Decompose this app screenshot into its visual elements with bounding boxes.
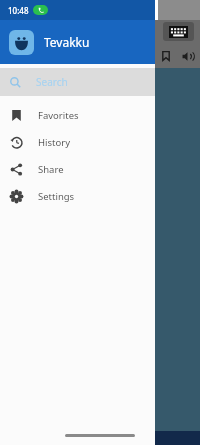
- button[interactable]: Keyboard: [163, 22, 194, 41]
- button[interactable]: Volume: [179, 48, 195, 64]
- button[interactable]: App icon: [9, 30, 34, 55]
- staticText: History: [38, 136, 70, 149]
- button[interactable]: Bookmark: [158, 48, 174, 64]
- staticText: 10:48: [8, 5, 29, 16]
- button[interactable]: Search: [0, 68, 155, 96]
- staticText: Settings: [38, 190, 75, 203]
- button[interactable]: Settings: [0, 183, 155, 210]
- staticText: Favorites: [38, 109, 79, 122]
- button[interactable]: Share: [0, 156, 155, 183]
- button[interactable]: Favorites: [0, 102, 155, 129]
- staticText: Tevakku: [44, 34, 90, 50]
- staticText: Share: [38, 163, 64, 176]
- staticText: Search: [36, 75, 68, 89]
- button[interactable]: History: [0, 129, 155, 156]
